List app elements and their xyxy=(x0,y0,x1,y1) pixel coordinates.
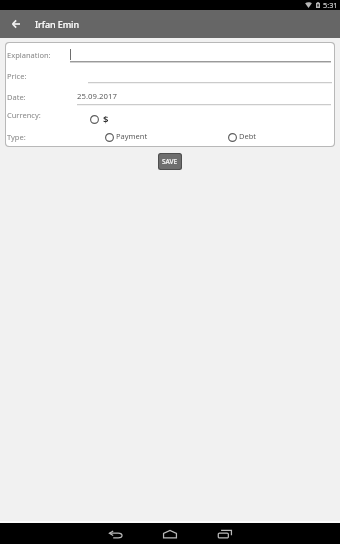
staticText: SAVE xyxy=(162,157,178,166)
staticText: Irfan Emin xyxy=(35,18,79,30)
button[interactable]: Debt xyxy=(228,130,246,144)
button[interactable]: Home xyxy=(152,519,188,544)
button[interactable]: SAVE xyxy=(159,154,181,169)
staticText: Debt xyxy=(239,131,257,141)
staticText: Currency: xyxy=(7,110,41,120)
staticText: Explanation: xyxy=(7,50,51,60)
button[interactable]: Payment xyxy=(105,130,137,144)
button[interactable]: Recent apps xyxy=(207,519,243,544)
staticText: 25.09.2017 xyxy=(77,91,117,102)
staticText: Date: xyxy=(7,92,26,102)
staticText: Payment xyxy=(116,131,148,141)
button[interactable]: Back xyxy=(98,519,134,544)
staticText: Type: xyxy=(7,132,26,142)
staticText: $ xyxy=(103,113,109,126)
staticText: Price: xyxy=(7,71,27,81)
staticText: 5:31 xyxy=(323,0,338,10)
button[interactable]: Back xyxy=(4,12,28,36)
button[interactable]: Dollar currency xyxy=(90,115,99,124)
